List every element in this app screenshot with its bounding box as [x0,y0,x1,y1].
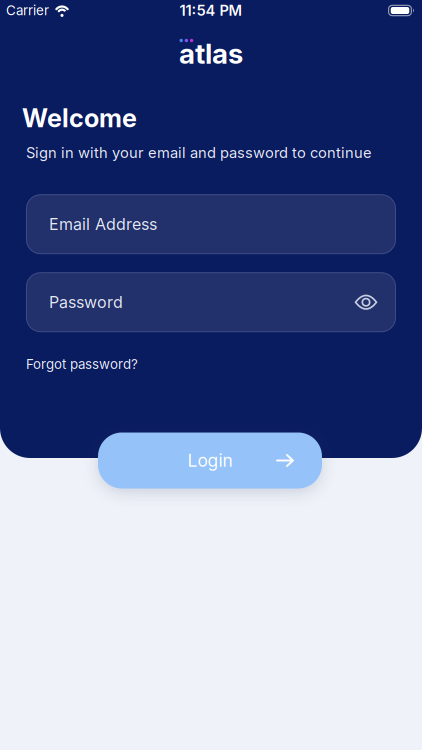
staticText: 11:54 PM [179,2,242,19]
button[interactable]: Login [98,432,322,488]
staticText: Carrier [6,3,49,18]
button[interactable]: Forgot password? [26,356,138,372]
button[interactable]: Email Address [26,194,396,254]
staticText: Password [49,293,123,312]
staticText: Forgot password? [26,356,138,372]
staticText: Sign in with your email and password to … [26,144,372,161]
button[interactable]: Password [26,272,396,332]
staticText: atlas [179,37,243,70]
staticText: Welcome [22,103,137,133]
staticText: Email Address [49,215,157,234]
button[interactable]: Show password [355,294,377,310]
staticText: Login [187,450,232,471]
